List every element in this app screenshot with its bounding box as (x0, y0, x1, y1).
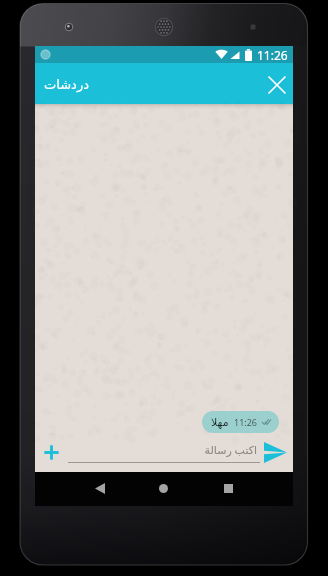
button[interactable]: Recent apps (216, 476, 240, 500)
staticText: اكتب رسالة (68, 442, 257, 457)
staticText: 11:26 (257, 47, 288, 63)
button[interactable]: Close (248, 63, 289, 104)
button[interactable]: Back (88, 476, 112, 500)
staticText: 11:26 (234, 416, 258, 428)
button[interactable]: Attach (36, 437, 66, 467)
staticText: دردشات (44, 77, 89, 92)
button[interactable]: مهلا (211, 411, 271, 433)
button[interactable]: Home (151, 476, 175, 500)
button[interactable]: Send (260, 437, 291, 467)
staticText: مهلا (211, 416, 229, 429)
